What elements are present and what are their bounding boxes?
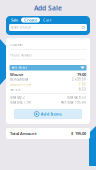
staticText: Mouse — [10, 72, 23, 77]
staticText: Cart — [43, 17, 51, 23]
staticText: Tax 12% — [10, 88, 20, 91]
staticText: Add Items — [41, 111, 62, 117]
staticText: Total Qty: 2 — [10, 96, 25, 99]
staticText: Sale — [11, 17, 18, 23]
staticText: 8.53 — [79, 88, 86, 91]
button[interactable]: Cart — [41, 17, 53, 22]
button[interactable]: Sale Items — [9, 65, 86, 70]
staticText: 2 x 39.50 — [72, 78, 86, 81]
staticText: Add Sale — [34, 4, 62, 12]
button[interactable]: Add Items — [14, 109, 82, 119]
staticText: Search product — [11, 26, 31, 29]
staticText: $ 195.00 — [71, 131, 86, 136]
staticText: Discount (10%) — [10, 83, 31, 86]
staticText: Total Tax: 8.53 — [67, 96, 86, 99]
button[interactable]: Sale — [9, 17, 20, 22]
staticText: Item Subtotal — [10, 78, 28, 81]
staticText: Total Amount — [10, 131, 37, 136]
staticText: Net Total: 195.00 — [61, 101, 86, 104]
button[interactable]: Create — [21, 17, 40, 22]
staticText: Customer — [10, 43, 23, 47]
staticText: Create — [24, 17, 37, 23]
staticText: Total Disc: 7.90 — [10, 101, 31, 104]
staticText: Phone Number — [10, 54, 32, 57]
staticText: Sale Items — [11, 66, 26, 69]
staticText: 7.90 — [79, 83, 86, 86]
staticText: 79.00 — [77, 72, 86, 77]
